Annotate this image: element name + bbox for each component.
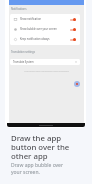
staticText: Show bubble over your screen <box>20 27 57 31</box>
staticText: Translation settings <box>11 50 35 54</box>
staticText: Draw the app button over the other app <box>11 133 70 162</box>
staticText: Unknown app recognize and translate <box>9 69 84 72</box>
staticText: Keep notification always <box>20 37 50 41</box>
staticText: Translate System <box>13 60 34 64</box>
staticText: Draw app bubble over your screen. <box>11 162 63 175</box>
button[interactable]: Show notification <box>10 14 80 24</box>
button[interactable]: Translate bubble <box>74 81 80 87</box>
button[interactable]: Keep notification always <box>10 34 80 44</box>
staticText: Notifications <box>11 7 27 11</box>
button[interactable]: Show bubble over your screen <box>10 24 80 34</box>
button[interactable]: Translate System <box>10 59 80 65</box>
staticText: Show notification <box>20 17 42 21</box>
